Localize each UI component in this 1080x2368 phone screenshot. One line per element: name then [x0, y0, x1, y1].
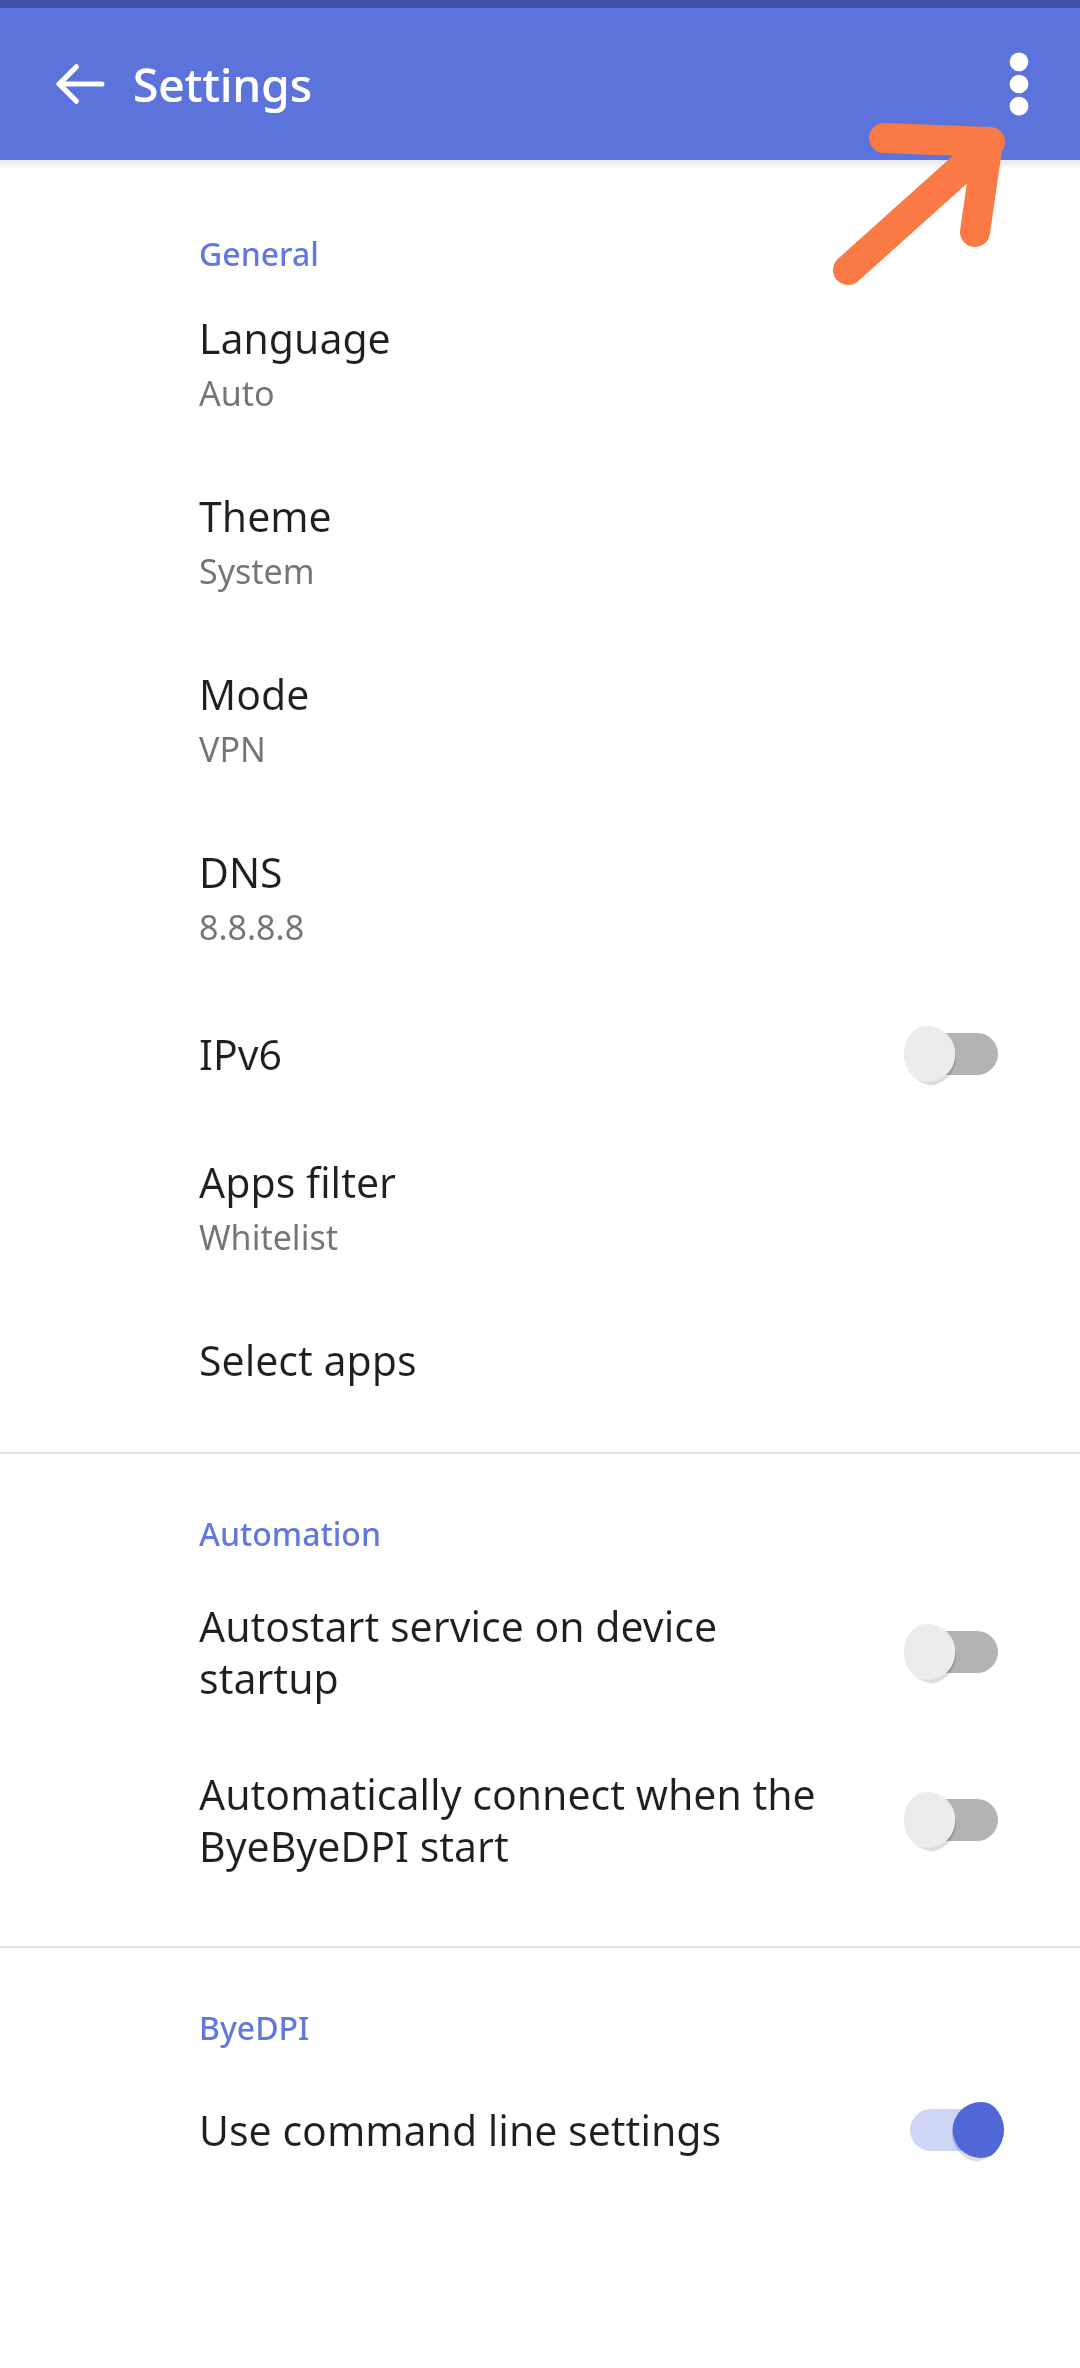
staticText: Apps filter — [199, 1154, 397, 1210]
staticText: ByeDPI — [199, 2006, 310, 2050]
staticText: VPN — [199, 726, 266, 772]
staticText: Autostart service on device startup — [199, 1598, 864, 1706]
staticText: Settings — [133, 53, 313, 116]
button[interactable]: Back — [34, 38, 126, 130]
staticText: IPv6 — [199, 1026, 282, 1082]
button[interactable]: Toggle off — [904, 1788, 1004, 1852]
button[interactable]: Language — [0, 276, 1080, 422]
button[interactable]: Theme — [0, 422, 1080, 600]
staticText: 8.8.8.8 — [199, 904, 305, 950]
button[interactable]: More options — [973, 38, 1065, 130]
staticText: General — [199, 232, 319, 276]
staticText: Language — [199, 310, 391, 366]
button[interactable]: Autostart service on device startup — [0, 1556, 1080, 1712]
staticText: Theme — [199, 488, 332, 544]
button[interactable]: Toggle off — [904, 1620, 1004, 1684]
button[interactable]: Automatically connect when the ByeByeDPI… — [0, 1712, 1080, 1880]
button[interactable]: DNS — [0, 778, 1080, 956]
staticText: Use command line settings — [199, 2102, 722, 2158]
button[interactable]: Toggle on — [904, 2098, 1004, 2162]
staticText: Whitelist — [199, 1214, 338, 1260]
staticText: System — [199, 548, 315, 594]
staticText: Mode — [199, 666, 310, 722]
button[interactable]: Apps filter — [0, 1092, 1080, 1266]
staticText: DNS — [199, 844, 283, 900]
staticText: Auto — [199, 370, 275, 416]
button[interactable]: Toggle off — [904, 1022, 1004, 1086]
button[interactable]: Select apps — [0, 1266, 1080, 1394]
button[interactable]: Use command line settings — [0, 2050, 1080, 2168]
staticText: Automatically connect when the ByeByeDPI… — [199, 1766, 864, 1874]
button[interactable]: Mode — [0, 600, 1080, 778]
staticText: Automation — [199, 1512, 381, 1556]
staticText: Select apps — [199, 1332, 417, 1388]
button[interactable]: IPv6 — [0, 956, 1080, 1092]
